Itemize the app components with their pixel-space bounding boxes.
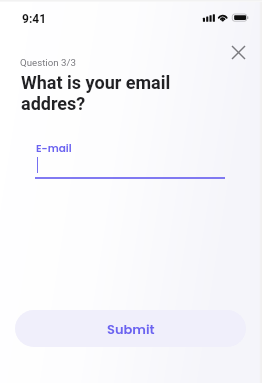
button[interactable]: Close	[223, 37, 253, 67]
staticText: What is your email addres?	[21, 72, 171, 114]
button[interactable]: Submit	[15, 310, 246, 347]
staticText: E-mail	[36, 141, 72, 156]
staticText: 9:41	[22, 12, 47, 26]
staticText: Submit	[107, 320, 155, 338]
button[interactable]: E-mail	[35, 138, 225, 180]
staticText: Question 3/3	[20, 57, 76, 68]
